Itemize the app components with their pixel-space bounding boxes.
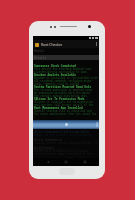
- staticText: SuperSU version 2.82 is installed and ma…: [34, 109, 98, 112]
- staticText: Superuser Check Completed: [34, 64, 76, 67]
- staticText: Device fingerprint and system build info…: [34, 130, 98, 133]
- staticText: Samsung Galaxy running Android Nougat 7.…: [34, 141, 98, 144]
- staticText: NRD90M.G930FXXU1DQAS kernel version 3.18…: [34, 149, 98, 152]
- staticText: The /system partition is mounted read-on…: [34, 88, 98, 91]
- staticText: Root Checker: [41, 42, 63, 47]
- staticText: Busybox Applets Available: [34, 73, 76, 76]
- staticText: tools commonly used by rooted applicatio…: [34, 82, 98, 85]
- button[interactable]: Home: [62, 158, 70, 166]
- staticText: SELinux is currently set to permissive m…: [34, 100, 98, 103]
- staticText: System Partition Mounted Read Only: [34, 85, 92, 88]
- staticText: Root Management App Installed: [34, 106, 83, 109]
- staticText: Last checked 12 June 2017 at 18:22: [34, 157, 87, 159]
- staticText: below for the current installation on th…: [34, 133, 98, 136]
- staticText: Details: [34, 56, 47, 60]
- staticText: all standard commands including mount ch…: [34, 79, 98, 82]
- staticText: stock recovery image installed on this d…: [34, 152, 98, 155]
- staticText: Build Details: [34, 146, 55, 149]
- staticText: the console output area below this messa…: [34, 94, 98, 97]
- button[interactable]: Back: [44, 158, 52, 166]
- button[interactable]: Root Checker: [33, 40, 99, 48]
- staticText: /system/xbin/su accessible to apps reque…: [34, 70, 98, 73]
- staticText: applications full access to all of the p…: [34, 103, 98, 106]
- staticText: be remounted writable with the mount com…: [34, 91, 98, 94]
- staticText: Result: [34, 49, 45, 53]
- staticText: Busybox is installed in /system/xbin wit…: [34, 76, 98, 79]
- button[interactable]: [33, 120, 99, 129]
- staticText: SELinux Set To Permissive Mode: [34, 97, 85, 100]
- staticText: This device has standard Android root ac…: [34, 67, 98, 70]
- button[interactable]: Recents: [81, 158, 89, 166]
- staticText: for every application that has asked for…: [34, 112, 98, 115]
- staticText: Device Information: [34, 138, 63, 141]
